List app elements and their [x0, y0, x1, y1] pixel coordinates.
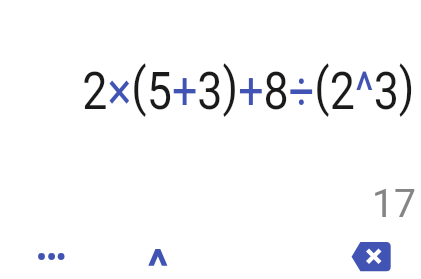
staticText: 2×(5+3)+8÷(2^3)	[82, 58, 414, 121]
button[interactable]	[28, 233, 76, 279]
button[interactable]	[347, 233, 395, 279]
staticText: 17	[372, 181, 416, 227]
button[interactable]	[134, 233, 182, 279]
